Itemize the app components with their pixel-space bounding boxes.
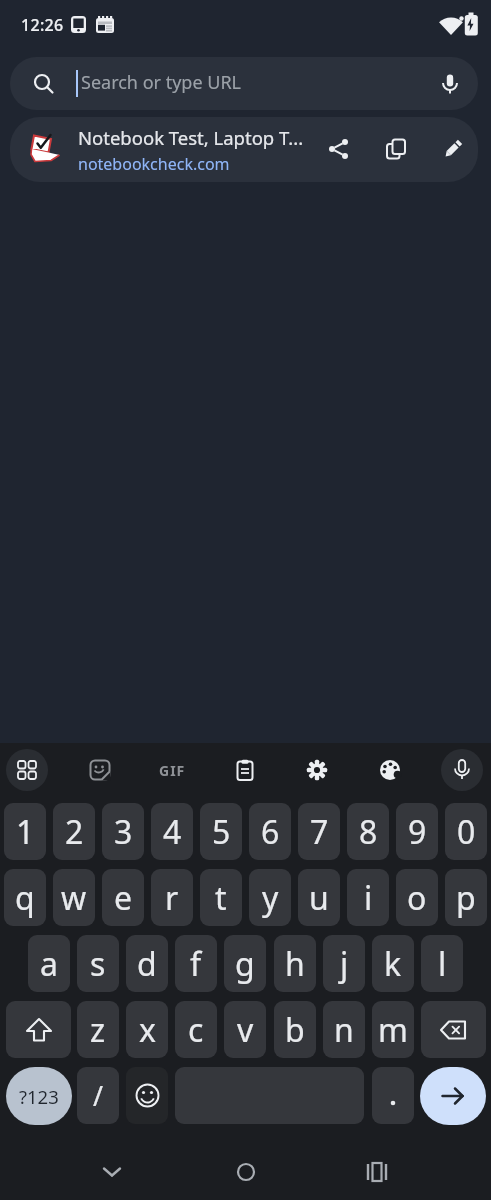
- staticText: g: [235, 942, 255, 986]
- staticText: s: [90, 942, 106, 986]
- button[interactable]: [92, 1156, 132, 1188]
- button[interactable]: [6, 1001, 71, 1058]
- button[interactable]: w: [53, 869, 95, 926]
- staticText: 3: [114, 810, 133, 854]
- button[interactable]: a: [28, 935, 70, 992]
- staticText: Notebook Test, Laptop T...: [78, 125, 304, 150]
- staticText: 12:26: [21, 14, 64, 36]
- button[interactable]: q: [4, 869, 46, 926]
- staticText: 5: [212, 810, 231, 854]
- staticText: m: [378, 1008, 408, 1052]
- staticText: z: [90, 1008, 106, 1052]
- staticText: Search or type URL: [81, 70, 242, 95]
- button[interactable]: h: [274, 935, 316, 992]
- staticText: f: [190, 942, 202, 986]
- button[interactable]: r: [151, 869, 193, 926]
- button[interactable]: p: [445, 869, 487, 926]
- staticText: v: [237, 1008, 254, 1052]
- staticText: t: [215, 876, 227, 920]
- button[interactable]: Notebook Test, Laptop T...: [10, 117, 478, 182]
- button[interactable]: [226, 1156, 266, 1188]
- button[interactable]: [84, 754, 116, 786]
- button[interactable]: x: [126, 1001, 168, 1058]
- button[interactable]: [357, 1156, 397, 1188]
- staticText: k: [384, 942, 402, 986]
- staticText: u: [309, 876, 329, 920]
- staticText: 8: [359, 810, 378, 854]
- button[interactable]: GIF: [152, 756, 192, 784]
- button[interactable]: 9: [396, 803, 438, 860]
- button[interactable]: 6: [249, 803, 291, 860]
- button[interactable]: t: [200, 869, 242, 926]
- staticText: c: [188, 1008, 204, 1052]
- button[interactable]: ?123: [6, 1067, 72, 1125]
- button[interactable]: Search or type URL: [10, 57, 478, 110]
- staticText: b: [285, 1008, 305, 1052]
- button[interactable]: 5: [200, 803, 242, 860]
- staticText: GIF: [159, 761, 186, 780]
- button[interactable]: 2: [53, 803, 95, 860]
- staticText: j: [340, 942, 349, 986]
- staticText: x: [139, 1008, 156, 1052]
- button[interactable]: [372, 1067, 414, 1124]
- button[interactable]: c: [175, 1001, 217, 1058]
- staticText: r: [165, 876, 179, 920]
- button[interactable]: f: [175, 935, 217, 992]
- button[interactable]: /: [77, 1067, 119, 1124]
- staticText: e: [114, 876, 133, 920]
- button[interactable]: [374, 754, 406, 786]
- staticText: 6: [261, 810, 280, 854]
- button[interactable]: 7: [298, 803, 340, 860]
- button[interactable]: b: [274, 1001, 316, 1058]
- button[interactable]: j: [323, 935, 365, 992]
- staticText: 4: [163, 810, 182, 854]
- staticText: h: [285, 942, 305, 986]
- button[interactable]: [6, 749, 48, 791]
- staticText: p: [456, 876, 476, 920]
- staticText: 2: [65, 810, 84, 854]
- button[interactable]: [301, 754, 333, 786]
- button[interactable]: i: [347, 869, 389, 926]
- staticText: /: [93, 1077, 104, 1114]
- button[interactable]: 0: [445, 803, 487, 860]
- button[interactable]: 3: [102, 803, 144, 860]
- button[interactable]: [441, 749, 483, 791]
- button[interactable]: g: [224, 935, 266, 992]
- staticText: l: [438, 942, 447, 986]
- button[interactable]: 4: [151, 803, 193, 860]
- button[interactable]: l: [421, 935, 463, 992]
- staticText: q: [15, 876, 35, 920]
- button[interactable]: [420, 1067, 486, 1125]
- button[interactable]: o: [396, 869, 438, 926]
- staticText: 1: [16, 810, 35, 854]
- staticText: o: [407, 876, 427, 920]
- button[interactable]: e: [102, 869, 144, 926]
- staticText: n: [334, 1008, 354, 1052]
- button[interactable]: u: [298, 869, 340, 926]
- staticText: notebookcheck.com: [78, 153, 230, 175]
- button[interactable]: m: [372, 1001, 414, 1058]
- button[interactable]: [126, 1067, 168, 1124]
- staticText: a: [40, 942, 58, 986]
- button[interactable]: [229, 754, 261, 786]
- button[interactable]: k: [372, 935, 414, 992]
- button[interactable]: v: [224, 1001, 266, 1058]
- staticText: d: [137, 942, 157, 986]
- staticText: y: [262, 876, 279, 920]
- button[interactable]: n: [323, 1001, 365, 1058]
- staticText: 7: [310, 810, 329, 854]
- button[interactable]: z: [77, 1001, 119, 1058]
- button[interactable]: d: [126, 935, 168, 992]
- button[interactable]: s: [77, 935, 119, 992]
- staticText: ?123: [19, 1084, 59, 1109]
- staticText: i: [364, 876, 373, 920]
- button[interactable]: [421, 1001, 486, 1058]
- button[interactable]: 8: [347, 803, 389, 860]
- staticText: w: [61, 876, 87, 920]
- staticText: 0: [457, 810, 476, 854]
- staticText: 9: [408, 810, 427, 854]
- button[interactable]: y: [249, 869, 291, 926]
- button[interactable]: 1: [4, 803, 46, 860]
